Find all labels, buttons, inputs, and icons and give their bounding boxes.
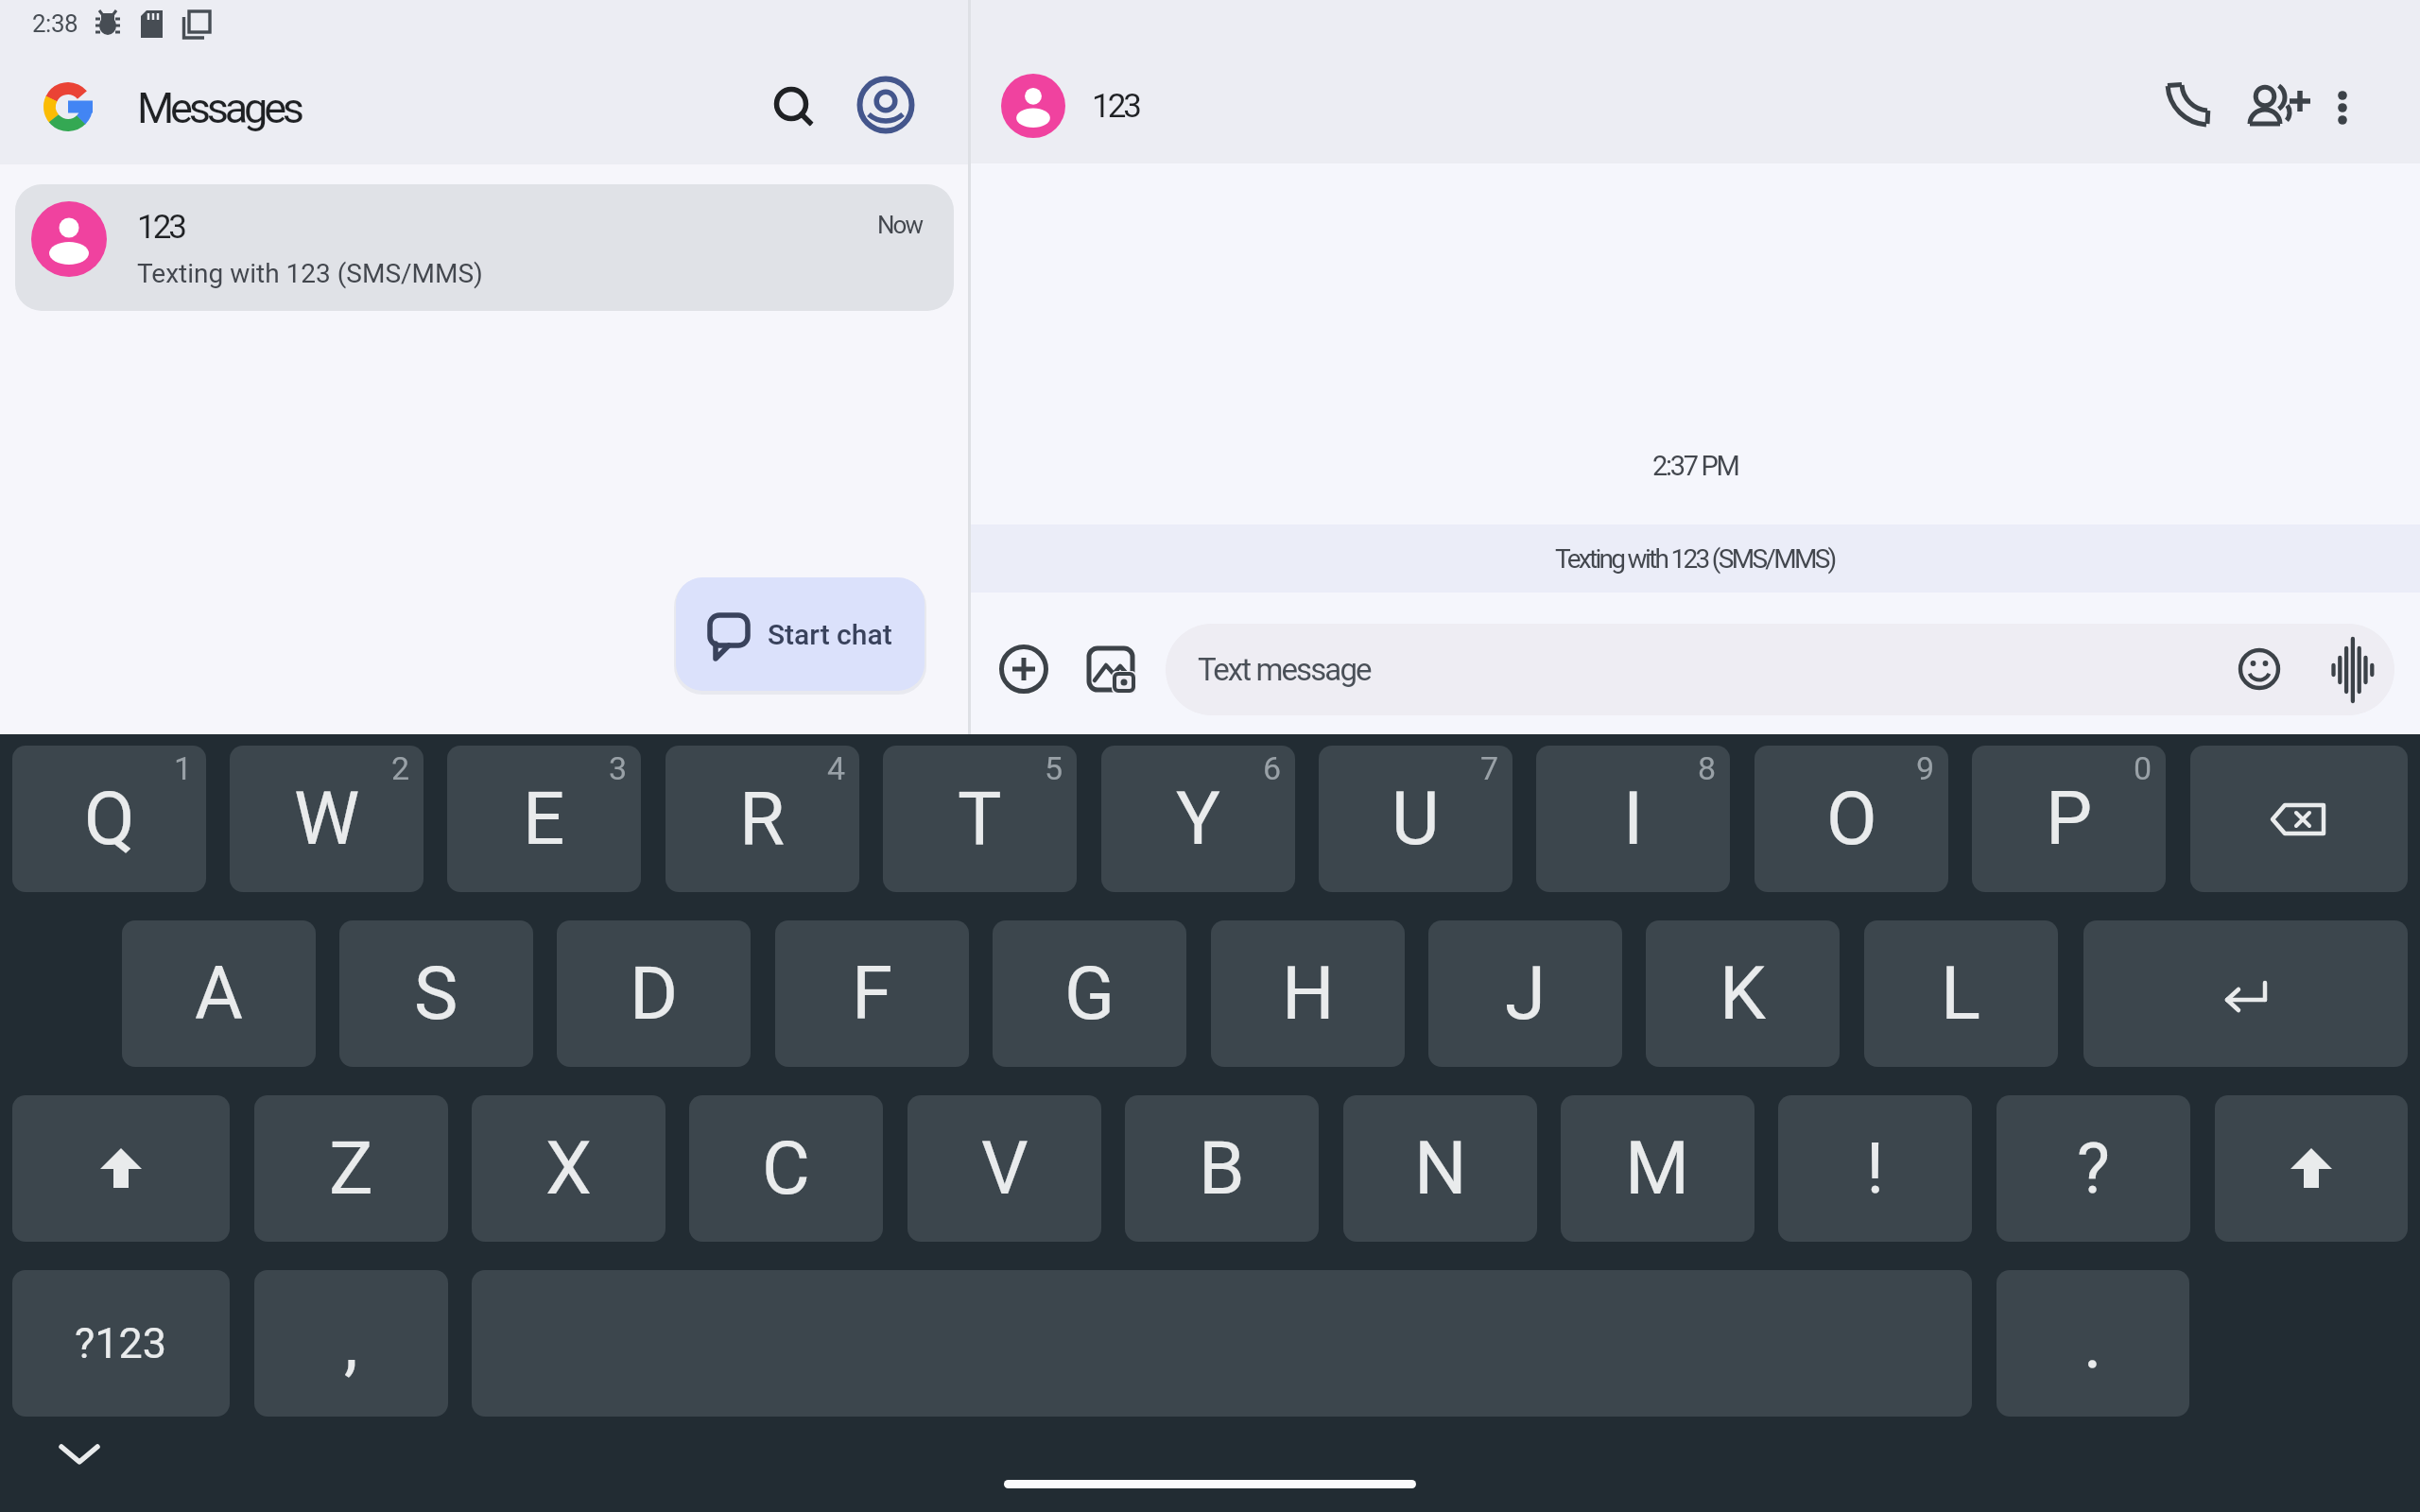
staticText: 9 bbox=[1916, 749, 1935, 787]
button[interactable] bbox=[2326, 637, 2379, 703]
staticText: ?123 bbox=[75, 1318, 167, 1368]
button[interactable]: U bbox=[1319, 746, 1512, 892]
staticText: Now bbox=[877, 211, 922, 239]
staticText: H bbox=[1282, 951, 1335, 1037]
button[interactable]: J bbox=[1428, 920, 1622, 1067]
button[interactable] bbox=[2190, 746, 2408, 892]
staticText: 2:38 bbox=[32, 9, 78, 38]
staticText: 123 bbox=[137, 208, 185, 247]
button[interactable]: M bbox=[1561, 1095, 1754, 1242]
staticText: 3 bbox=[609, 749, 628, 787]
staticText: O bbox=[1826, 776, 1877, 862]
button[interactable]: V bbox=[907, 1095, 1101, 1242]
button[interactable]: . bbox=[1996, 1270, 2189, 1417]
button[interactable]: Z bbox=[254, 1095, 448, 1242]
button[interactable]: , bbox=[254, 1270, 448, 1417]
staticText: 2:37 PM bbox=[1652, 450, 1738, 482]
button[interactable]: N bbox=[1343, 1095, 1537, 1242]
staticText: W bbox=[294, 776, 360, 862]
button[interactable] bbox=[2250, 80, 2303, 133]
staticText: . bbox=[2083, 1302, 2102, 1384]
staticText: K bbox=[1720, 951, 1766, 1037]
button[interactable]: ? bbox=[1996, 1095, 2190, 1242]
staticText: 1 bbox=[174, 749, 193, 787]
staticText: M bbox=[1625, 1125, 1690, 1211]
button[interactable]: I bbox=[1536, 746, 1730, 892]
staticText: E bbox=[523, 776, 565, 862]
staticText: 6 bbox=[1263, 749, 1282, 787]
button[interactable]: D bbox=[557, 920, 751, 1067]
button[interactable] bbox=[676, 577, 925, 691]
staticText: ? bbox=[2077, 1127, 2110, 1210]
staticText: 5 bbox=[1045, 749, 1063, 787]
button[interactable]: K bbox=[1646, 920, 1840, 1067]
button[interactable]: P bbox=[1972, 746, 2166, 892]
button[interactable] bbox=[2083, 920, 2408, 1067]
button[interactable] bbox=[1083, 643, 1140, 699]
staticText: Text message bbox=[1198, 651, 1371, 688]
button[interactable] bbox=[1166, 624, 2394, 715]
staticText: S bbox=[414, 951, 458, 1037]
button[interactable] bbox=[2215, 1095, 2408, 1242]
button[interactable]: 123 bbox=[15, 184, 954, 311]
button[interactable]: B bbox=[1125, 1095, 1319, 1242]
button[interactable]: T bbox=[883, 746, 1077, 892]
button[interactable] bbox=[2159, 80, 2212, 133]
staticText: 2 bbox=[391, 749, 410, 787]
staticText: X bbox=[545, 1125, 592, 1211]
button[interactable] bbox=[763, 77, 820, 133]
staticText: G bbox=[1064, 951, 1115, 1037]
button[interactable]: Q bbox=[12, 746, 206, 892]
button[interactable] bbox=[2233, 643, 2286, 696]
button[interactable]: ?123 bbox=[12, 1270, 230, 1417]
staticText: Start chat bbox=[768, 618, 892, 651]
staticText: F bbox=[852, 951, 893, 1037]
staticText: C bbox=[762, 1125, 810, 1211]
staticText: P bbox=[2046, 776, 2093, 862]
staticText: Texting with 123 (SMS/MMS) bbox=[137, 258, 483, 289]
button[interactable]: ! bbox=[1778, 1095, 1972, 1242]
button[interactable]: L bbox=[1864, 920, 2058, 1067]
button[interactable] bbox=[995, 641, 1052, 697]
staticText: Messages bbox=[137, 83, 301, 133]
button[interactable]: W bbox=[230, 746, 423, 892]
button[interactable]: R bbox=[665, 746, 859, 892]
staticText: D bbox=[630, 951, 679, 1037]
staticText: , bbox=[344, 1302, 358, 1384]
button[interactable]: E bbox=[447, 746, 641, 892]
staticText: I bbox=[1623, 776, 1644, 862]
staticText: Z bbox=[329, 1125, 373, 1211]
staticText: Q bbox=[84, 776, 135, 862]
staticText: 0 bbox=[2134, 749, 2152, 787]
button[interactable]: O bbox=[1754, 746, 1948, 892]
button[interactable]: S bbox=[339, 920, 533, 1067]
staticText: 4 bbox=[827, 749, 846, 787]
button[interactable]: A bbox=[122, 920, 316, 1067]
button[interactable] bbox=[2316, 80, 2369, 133]
staticText: 123 bbox=[1092, 87, 1140, 126]
staticText: L bbox=[1941, 951, 1981, 1037]
button[interactable] bbox=[12, 1095, 230, 1242]
staticText: 7 bbox=[1480, 749, 1499, 787]
staticText: 8 bbox=[1698, 749, 1717, 787]
staticText: T bbox=[958, 776, 1002, 862]
button[interactable]: Y bbox=[1101, 746, 1295, 892]
staticText: N bbox=[1414, 1125, 1467, 1211]
staticText: B bbox=[1199, 1125, 1245, 1211]
button[interactable]: X bbox=[472, 1095, 665, 1242]
button[interactable] bbox=[52, 1435, 109, 1476]
staticText: Texting with 123 (SMS/MMS) bbox=[1555, 543, 1835, 575]
staticText: V bbox=[981, 1125, 1028, 1211]
button[interactable]: G bbox=[993, 920, 1186, 1067]
staticText: ! bbox=[1866, 1127, 1885, 1210]
staticText: Y bbox=[1176, 776, 1220, 862]
staticText: R bbox=[739, 776, 786, 862]
button[interactable] bbox=[854, 73, 918, 137]
button[interactable]: C bbox=[689, 1095, 883, 1242]
staticText: U bbox=[1391, 776, 1440, 862]
button[interactable]: H bbox=[1211, 920, 1405, 1067]
staticText: J bbox=[1505, 951, 1547, 1037]
button[interactable]: F bbox=[775, 920, 969, 1067]
staticText: A bbox=[195, 951, 243, 1037]
